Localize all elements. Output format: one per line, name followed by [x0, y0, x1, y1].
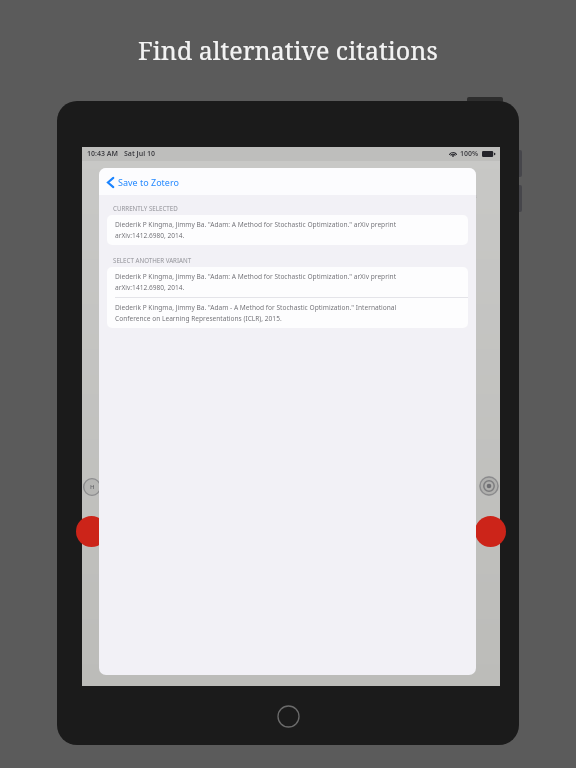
staticText: arXiv:1412.6980, 2014. [115, 231, 185, 240]
button[interactable]: Home [277, 705, 300, 728]
button[interactable]: Settings [479, 476, 499, 496]
button[interactable]: Save to Zotero [99, 171, 185, 193]
staticText: Sat Jul 10 [124, 149, 156, 159]
staticText: 10:43 AM [87, 149, 118, 159]
staticText: t [472, 169, 475, 177]
staticText: Diederik P Kingma, Jimmy Ba. "Adam: A Me… [115, 272, 397, 281]
staticText: gs [470, 192, 477, 200]
staticText: SELECT ANOTHER VARIANT [113, 256, 192, 264]
button[interactable]: Diederik P Kingma, Jimmy Ba. "Adam: A Me… [107, 267, 468, 297]
staticText: Diederik P Kingma, Jimmy Ba. "Adam: A Me… [115, 220, 397, 229]
staticText: Conference on Learning Representations (… [115, 314, 282, 323]
staticText: arXiv:1412.6980, 2014. [115, 283, 185, 292]
staticText: Diederik P Kingma, Jimmy Ba. "Adam - A M… [115, 303, 397, 312]
staticText: 100% [460, 149, 479, 159]
button[interactable]: History [83, 478, 101, 496]
staticText: Save to Zotero [118, 176, 179, 188]
button[interactable]: Diederik P Kingma, Jimmy Ba. "Adam - A M… [107, 298, 468, 328]
staticText: CURRENTLY SELECTED [113, 204, 178, 212]
staticText: Find alternative citations [138, 33, 438, 67]
staticText: H [90, 483, 95, 491]
button[interactable]: Diederik P Kingma, Jimmy Ba. "Adam: A Me… [107, 215, 468, 245]
